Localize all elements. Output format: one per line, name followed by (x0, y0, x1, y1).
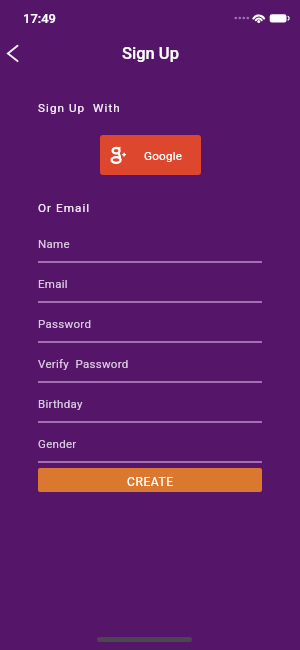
button[interactable]: Password (38, 317, 262, 343)
staticText: Google (144, 149, 183, 163)
staticText: Gender (38, 437, 77, 450)
button[interactable]: Google (100, 135, 201, 175)
staticText: Or Email (38, 201, 91, 215)
staticText: CREATE (127, 475, 174, 489)
staticText: 17:49 (23, 11, 56, 26)
button[interactable]: Back (0, 37, 30, 69)
button[interactable]: Birthday (38, 397, 262, 423)
staticText: Sign Up With (38, 101, 121, 115)
staticText: Password (38, 317, 92, 330)
staticText: Name (38, 237, 70, 250)
staticText: Birthday (38, 397, 83, 410)
staticText: Sign Up (122, 44, 179, 63)
button[interactable]: Email (38, 277, 262, 303)
button[interactable]: Gender (38, 437, 262, 463)
button[interactable]: Verify Password (38, 357, 262, 383)
button[interactable]: CREATE (38, 468, 262, 492)
staticText: Verify Password (38, 357, 129, 370)
button[interactable]: Name (38, 237, 262, 263)
staticText: Email (38, 277, 68, 290)
